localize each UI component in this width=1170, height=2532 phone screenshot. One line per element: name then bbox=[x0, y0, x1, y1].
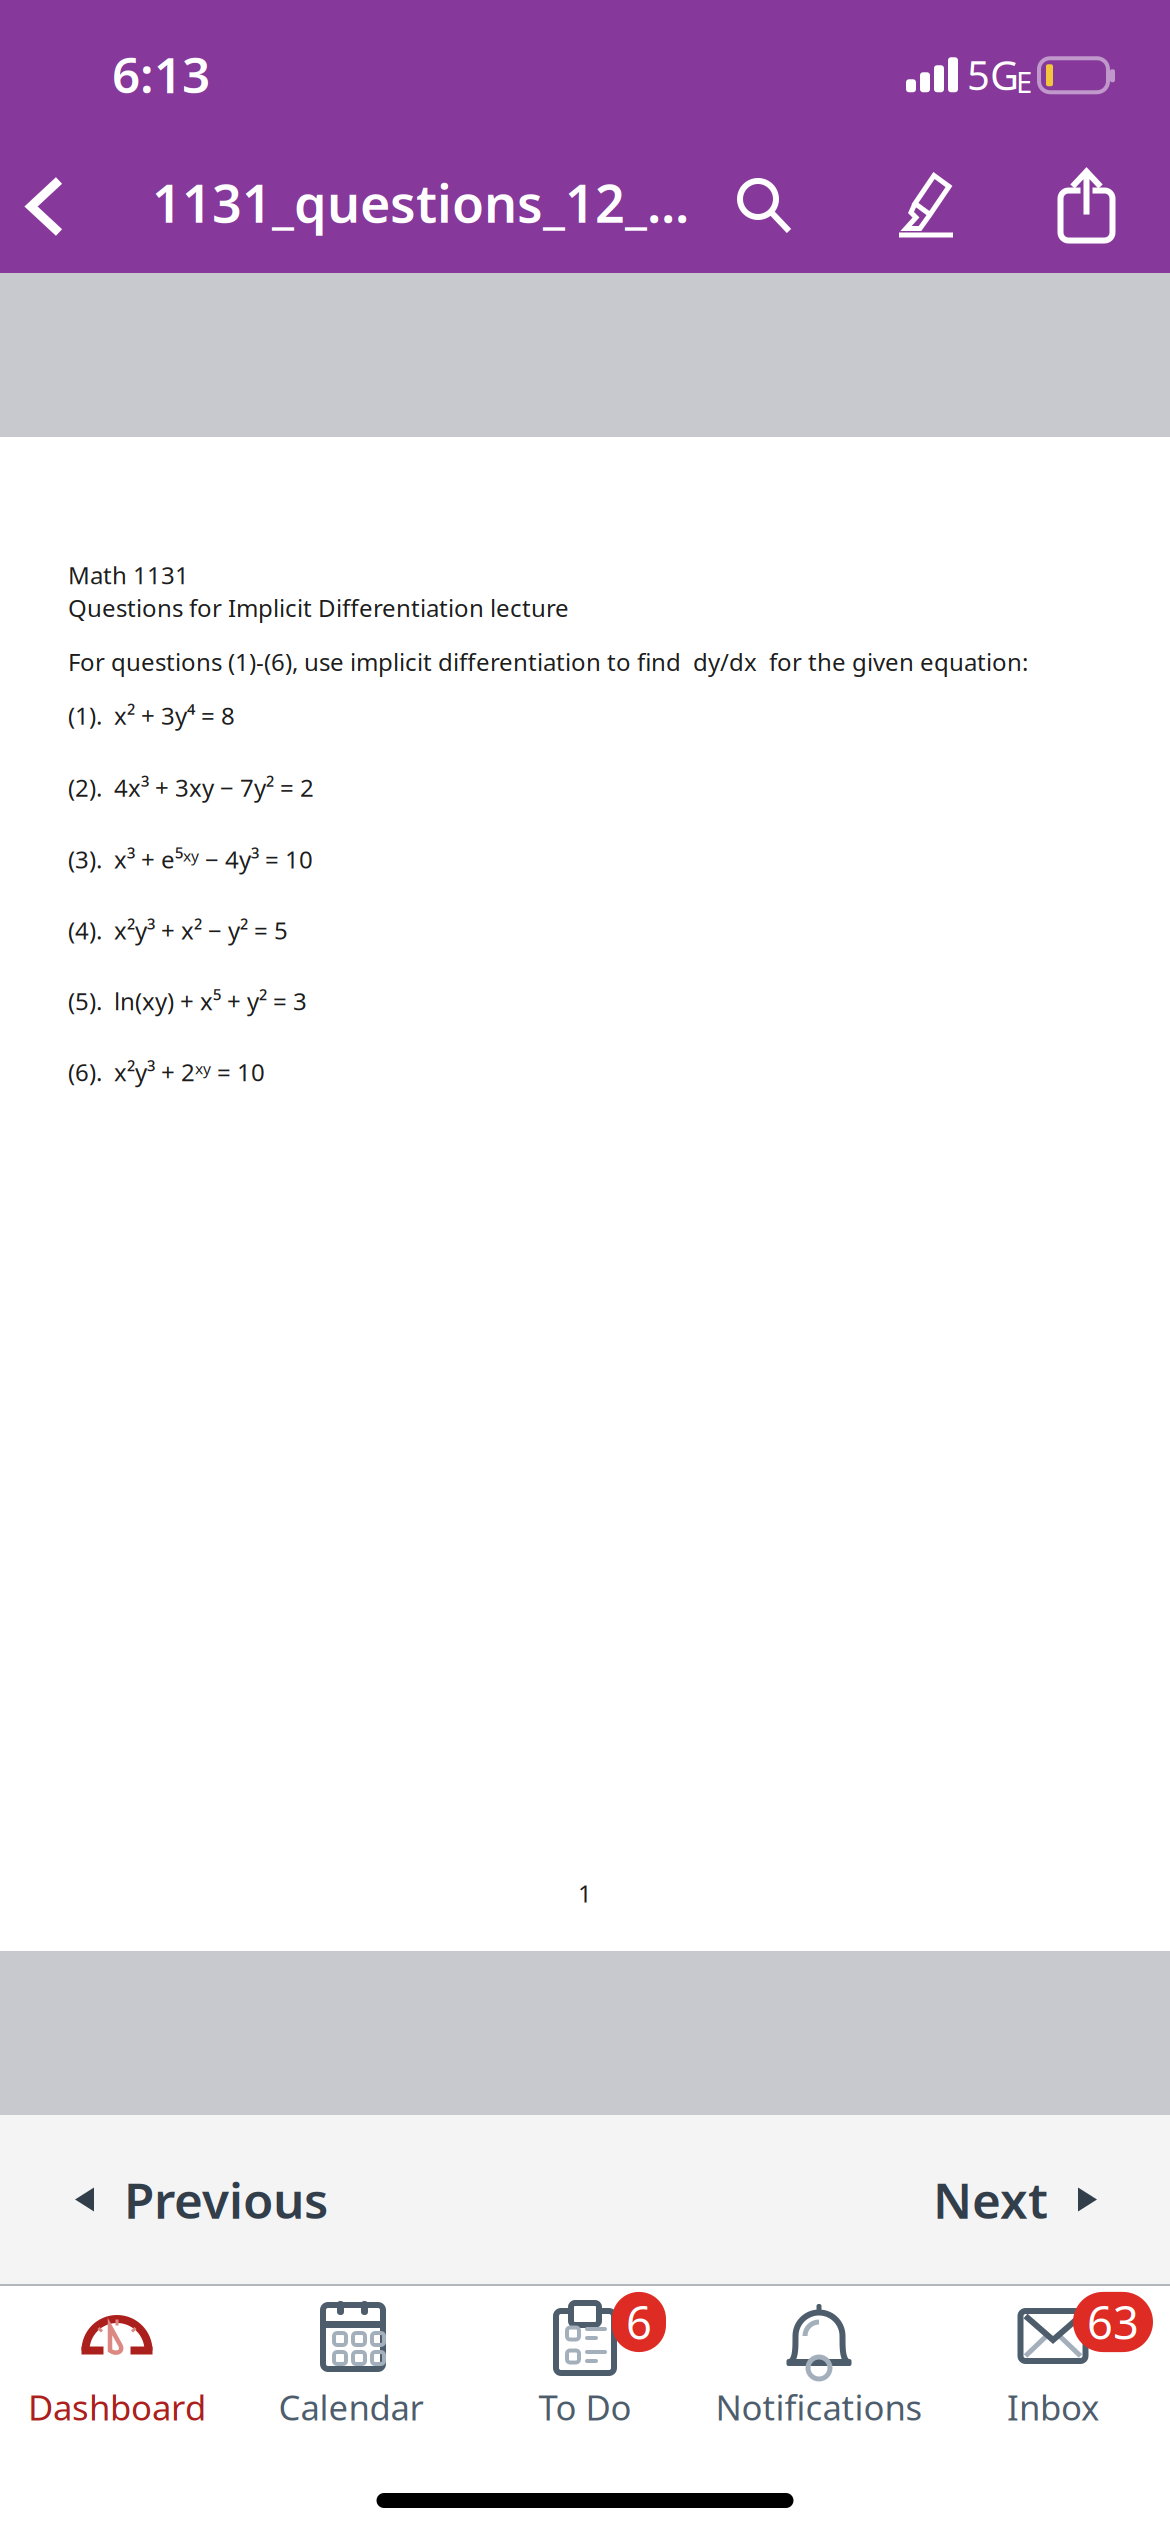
staticText: Next bbox=[933, 2167, 1048, 2232]
staticText: 6 bbox=[626, 2292, 652, 2352]
staticText: (3). x³ + e⁵ˣʸ − 4y³ = 10 bbox=[68, 843, 313, 875]
staticText: 5G bbox=[967, 48, 1019, 101]
button[interactable]: Previous bbox=[0, 2115, 368, 2284]
staticText: 1 bbox=[578, 1877, 592, 1909]
button[interactable]: Dashboard bbox=[0, 2286, 234, 2430]
button[interactable]: Calendar bbox=[234, 2286, 468, 2430]
staticText: (1). x² + 3y⁴ = 8 bbox=[68, 700, 235, 731]
staticText: Previous bbox=[124, 2167, 328, 2232]
button[interactable]: Back bbox=[0, 140, 90, 273]
staticText: Calendar bbox=[278, 2384, 423, 2430]
staticText: 6:13 bbox=[112, 41, 210, 107]
staticText: (5). ln(xy) + x⁵ + y² = 3 bbox=[68, 985, 307, 1017]
button[interactable]: Annotate bbox=[871, 135, 981, 268]
button[interactable]: 1131_questions_12_... bbox=[152, 136, 732, 269]
staticText: Math 1131 bbox=[68, 559, 189, 591]
staticText: (6). x²y³ + 2ˣʸ = 10 bbox=[68, 1056, 265, 1088]
button[interactable]: Notifications bbox=[702, 2286, 936, 2430]
button[interactable]: Search bbox=[710, 140, 820, 273]
button[interactable]: Next bbox=[893, 2115, 1170, 2284]
staticText: 63 bbox=[1087, 2292, 1139, 2352]
staticText: E bbox=[1016, 62, 1032, 101]
staticText: Questions for Implicit Differentiation l… bbox=[68, 592, 569, 624]
button[interactable]: 6 bbox=[468, 2286, 702, 2430]
staticText: 1131_questions_12_... bbox=[152, 168, 689, 237]
staticText: (2). 4x³ + 3xy − 7y² = 2 bbox=[68, 771, 314, 803]
staticText: Notifications bbox=[715, 2384, 922, 2430]
staticText: Inbox bbox=[1007, 2384, 1099, 2430]
button[interactable]: Share bbox=[1032, 140, 1142, 273]
staticText: For questions (1)-(6), use implicit diff… bbox=[68, 646, 1028, 678]
button[interactable]: 63 bbox=[936, 2286, 1170, 2430]
staticText: Dashboard bbox=[28, 2384, 206, 2430]
staticText: To Do bbox=[538, 2384, 631, 2430]
staticText: (4). x²y³ + x² − y² = 5 bbox=[68, 914, 288, 946]
